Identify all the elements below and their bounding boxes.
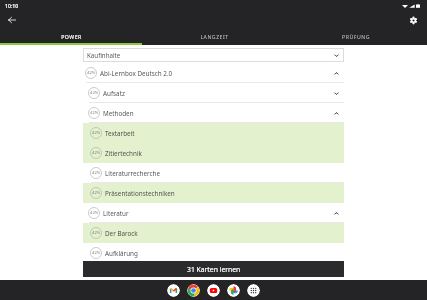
staticText: 42%	[90, 210, 99, 216]
button[interactable]: 42%	[83, 83, 344, 103]
staticText: Methoden	[103, 109, 134, 118]
button[interactable]: 42%	[83, 163, 344, 183]
staticText: Zitiertechnik	[105, 149, 142, 158]
button[interactable]: 42%	[83, 143, 344, 163]
staticText: Präsentationstechniken	[105, 189, 175, 198]
staticText: 42%	[87, 70, 96, 76]
button[interactable]: 42%	[83, 63, 344, 83]
button[interactable]: Back	[5, 13, 19, 27]
button[interactable]: 42%	[83, 243, 344, 263]
staticText: Textarbeit	[105, 129, 135, 138]
staticText: Kaufinhalte	[87, 51, 121, 59]
staticText: 42%	[92, 250, 101, 256]
button[interactable]: Photos	[227, 284, 240, 297]
staticText: 42%	[92, 130, 101, 136]
button[interactable]: 42%	[83, 203, 344, 223]
staticText: 42%	[90, 110, 99, 116]
staticText: Aufklärung	[105, 249, 138, 258]
staticText: POWER	[61, 33, 82, 40]
button[interactable]: POWER	[0, 29, 143, 43]
staticText: Aufsatz	[103, 89, 125, 98]
staticText: Literatur	[103, 209, 129, 218]
button[interactable]: Gmail	[167, 284, 180, 297]
staticText: PRÜFUNG	[342, 33, 370, 40]
staticText: Literaturrecherche	[105, 169, 160, 178]
staticText: 10:10	[5, 2, 19, 9]
button[interactable]: Chrome	[187, 284, 200, 297]
button[interactable]: PRÜFUNG	[285, 29, 427, 43]
staticText: 42%	[92, 230, 101, 236]
button[interactable]: 42%	[83, 103, 344, 123]
button[interactable]: Kaufinhalte	[83, 48, 344, 62]
button[interactable]: LANGZEIT	[143, 29, 285, 43]
button[interactable]: Settings	[406, 13, 421, 28]
staticText: 42%	[90, 90, 99, 96]
button[interactable]: All apps	[247, 284, 260, 297]
button[interactable]: 42%	[83, 123, 344, 143]
staticText: LANGZEIT	[200, 33, 229, 40]
button[interactable]: 31 Karten lernen	[83, 261, 344, 277]
staticText: 42%	[92, 150, 101, 156]
button[interactable]: 42%	[83, 223, 344, 243]
staticText: 42%	[92, 170, 101, 176]
staticText: 42%	[92, 190, 101, 196]
staticText: Abi-Lernbox Deutsch 2.0	[100, 69, 173, 78]
button[interactable]: YouTube	[207, 284, 220, 297]
button[interactable]: 42%	[83, 183, 344, 203]
staticText: Der Barock	[105, 229, 138, 238]
staticText: 31 Karten lernen	[187, 265, 241, 274]
